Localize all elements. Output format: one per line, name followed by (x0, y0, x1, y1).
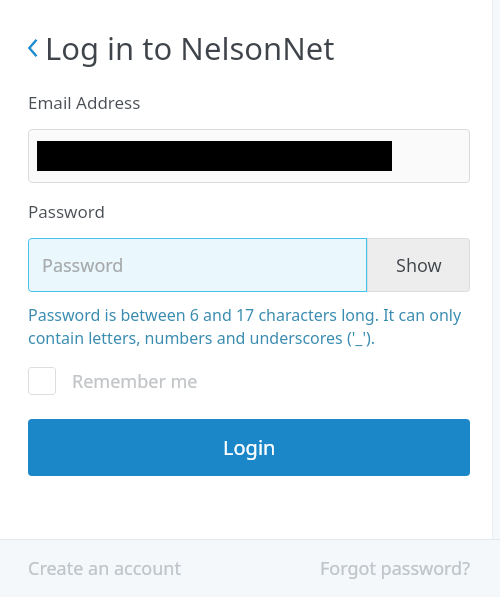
button[interactable]: Back (0, 26, 500, 70)
staticText: Log in to NelsonNet (45, 27, 335, 69)
button[interactable]: Create an account (0, 540, 250, 597)
button[interactable]: Remember me (28, 365, 198, 397)
staticText: Password (42, 253, 124, 278)
staticText: Login (223, 434, 276, 461)
staticText: Email Address (28, 91, 141, 114)
button[interactable] (28, 129, 470, 183)
button[interactable]: Forgot password? (250, 540, 500, 597)
staticText: Create an account (28, 556, 181, 581)
button[interactable]: Login (28, 419, 470, 476)
staticText: Password is between 6 and 17 characters … (28, 304, 470, 349)
staticText: Forgot password? (319, 556, 470, 581)
button[interactable]: Password (28, 238, 367, 292)
staticText: Password (28, 200, 105, 223)
other: Back (26, 35, 40, 61)
staticText: Show (396, 253, 442, 278)
staticText: Remember me (72, 369, 198, 394)
button[interactable]: Show (367, 238, 470, 292)
